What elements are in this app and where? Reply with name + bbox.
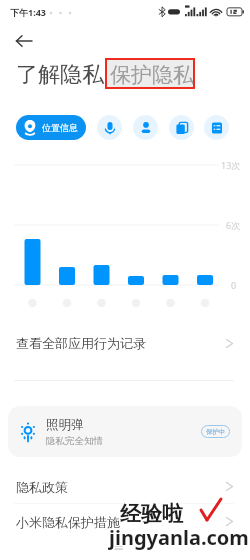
staticText: 0 <box>231 279 237 291</box>
staticText: jingyanla.com <box>109 523 249 550</box>
staticText: 经验啦 <box>119 501 182 527</box>
staticText: jingyanla.com <box>108 523 248 550</box>
staticText: 6次 <box>226 219 241 231</box>
staticText: jingyanla.com <box>110 524 250 551</box>
button[interactable]: 位置信息 <box>16 115 86 140</box>
staticText: jingyanla.com <box>109 525 249 552</box>
staticText: 经验啦 <box>120 500 183 526</box>
staticText: 小米隐私保护措施 <box>16 514 120 530</box>
button[interactable]: 查看全部应用行为记录 <box>0 326 250 360</box>
staticText: 经验啦 <box>121 502 184 528</box>
button[interactable]: Microphone <box>97 115 122 140</box>
button[interactable]: 小米隐私保护措施 <box>0 504 250 537</box>
staticText: 隐私政策 <box>16 479 68 495</box>
staticText: 查看全部应用行为记录 <box>16 335 146 351</box>
staticText: 保护隐私 <box>110 62 194 88</box>
staticText: 了解隐私 <box>16 61 104 89</box>
staticText: jingyanla.com <box>108 525 248 552</box>
staticText: jingyanla.com <box>108 524 248 551</box>
button[interactable]: Back <box>8 28 40 54</box>
staticText: 隐私完全知情 <box>46 435 103 447</box>
staticText: 经验啦 <box>121 501 184 527</box>
staticText: 经验啦 <box>120 501 183 527</box>
staticText: 经验啦 <box>120 502 183 528</box>
staticText: 位置信息 <box>42 122 78 133</box>
staticText: 经验啦 <box>119 500 182 526</box>
staticText: jingyanla.com <box>110 525 250 552</box>
button[interactable]: Contacts <box>133 115 158 140</box>
staticText: jingyanla.com <box>110 523 250 550</box>
button[interactable]: Clipboard <box>169 115 194 140</box>
button[interactable]: Records <box>204 115 229 140</box>
staticText: 13次 <box>221 159 241 171</box>
staticText: 下午1:43 <box>10 6 46 18</box>
button[interactable]: 照明弹 <box>8 406 242 457</box>
staticText: 照明弹 <box>46 417 84 433</box>
staticText: 保护中 <box>206 428 226 436</box>
staticText: 经验啦 <box>119 502 182 528</box>
staticText: jingyanla.com <box>109 524 249 551</box>
button[interactable]: 隐私政策 <box>0 470 250 503</box>
staticText: 经验啦 <box>121 500 184 526</box>
